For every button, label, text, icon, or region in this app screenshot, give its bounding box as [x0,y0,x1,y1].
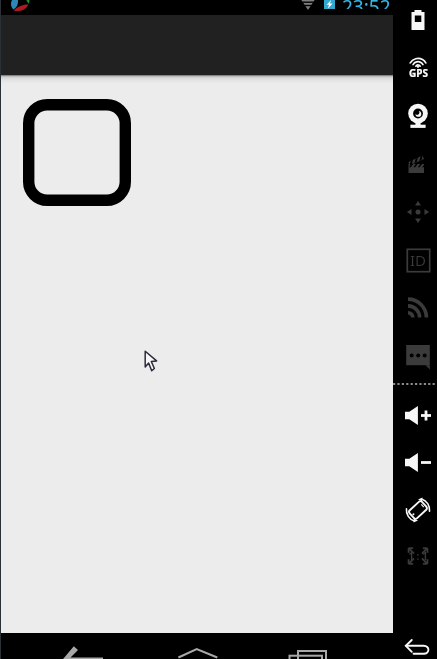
button[interactable]: Recents [275,633,355,659]
button[interactable]: Battery [393,0,437,42]
staticText: ID [410,250,427,270]
button[interactable]: Home [160,633,240,659]
button[interactable]: Volume up [393,393,437,437]
button[interactable]: Back [393,625,437,659]
button[interactable]: Messages [393,334,437,378]
button[interactable]: Camera [393,95,437,139]
button[interactable]: Cellular [393,285,437,329]
button[interactable]: Stop [23,99,131,206]
button[interactable]: D-pad [393,190,437,234]
button[interactable]: Back [46,633,130,659]
button[interactable]: Volume down [393,440,437,484]
button[interactable]: GPS [393,48,437,92]
button[interactable]: Phone ID [393,238,437,282]
staticText: 23:52 [342,0,391,9]
button[interactable]: Rotate [393,488,437,532]
button[interactable]: Record screen [393,142,437,186]
staticText: GPS [409,66,428,80]
button[interactable]: Zoom 1 to 1 [393,534,437,578]
staticText: 1 : 1 [408,549,428,563]
